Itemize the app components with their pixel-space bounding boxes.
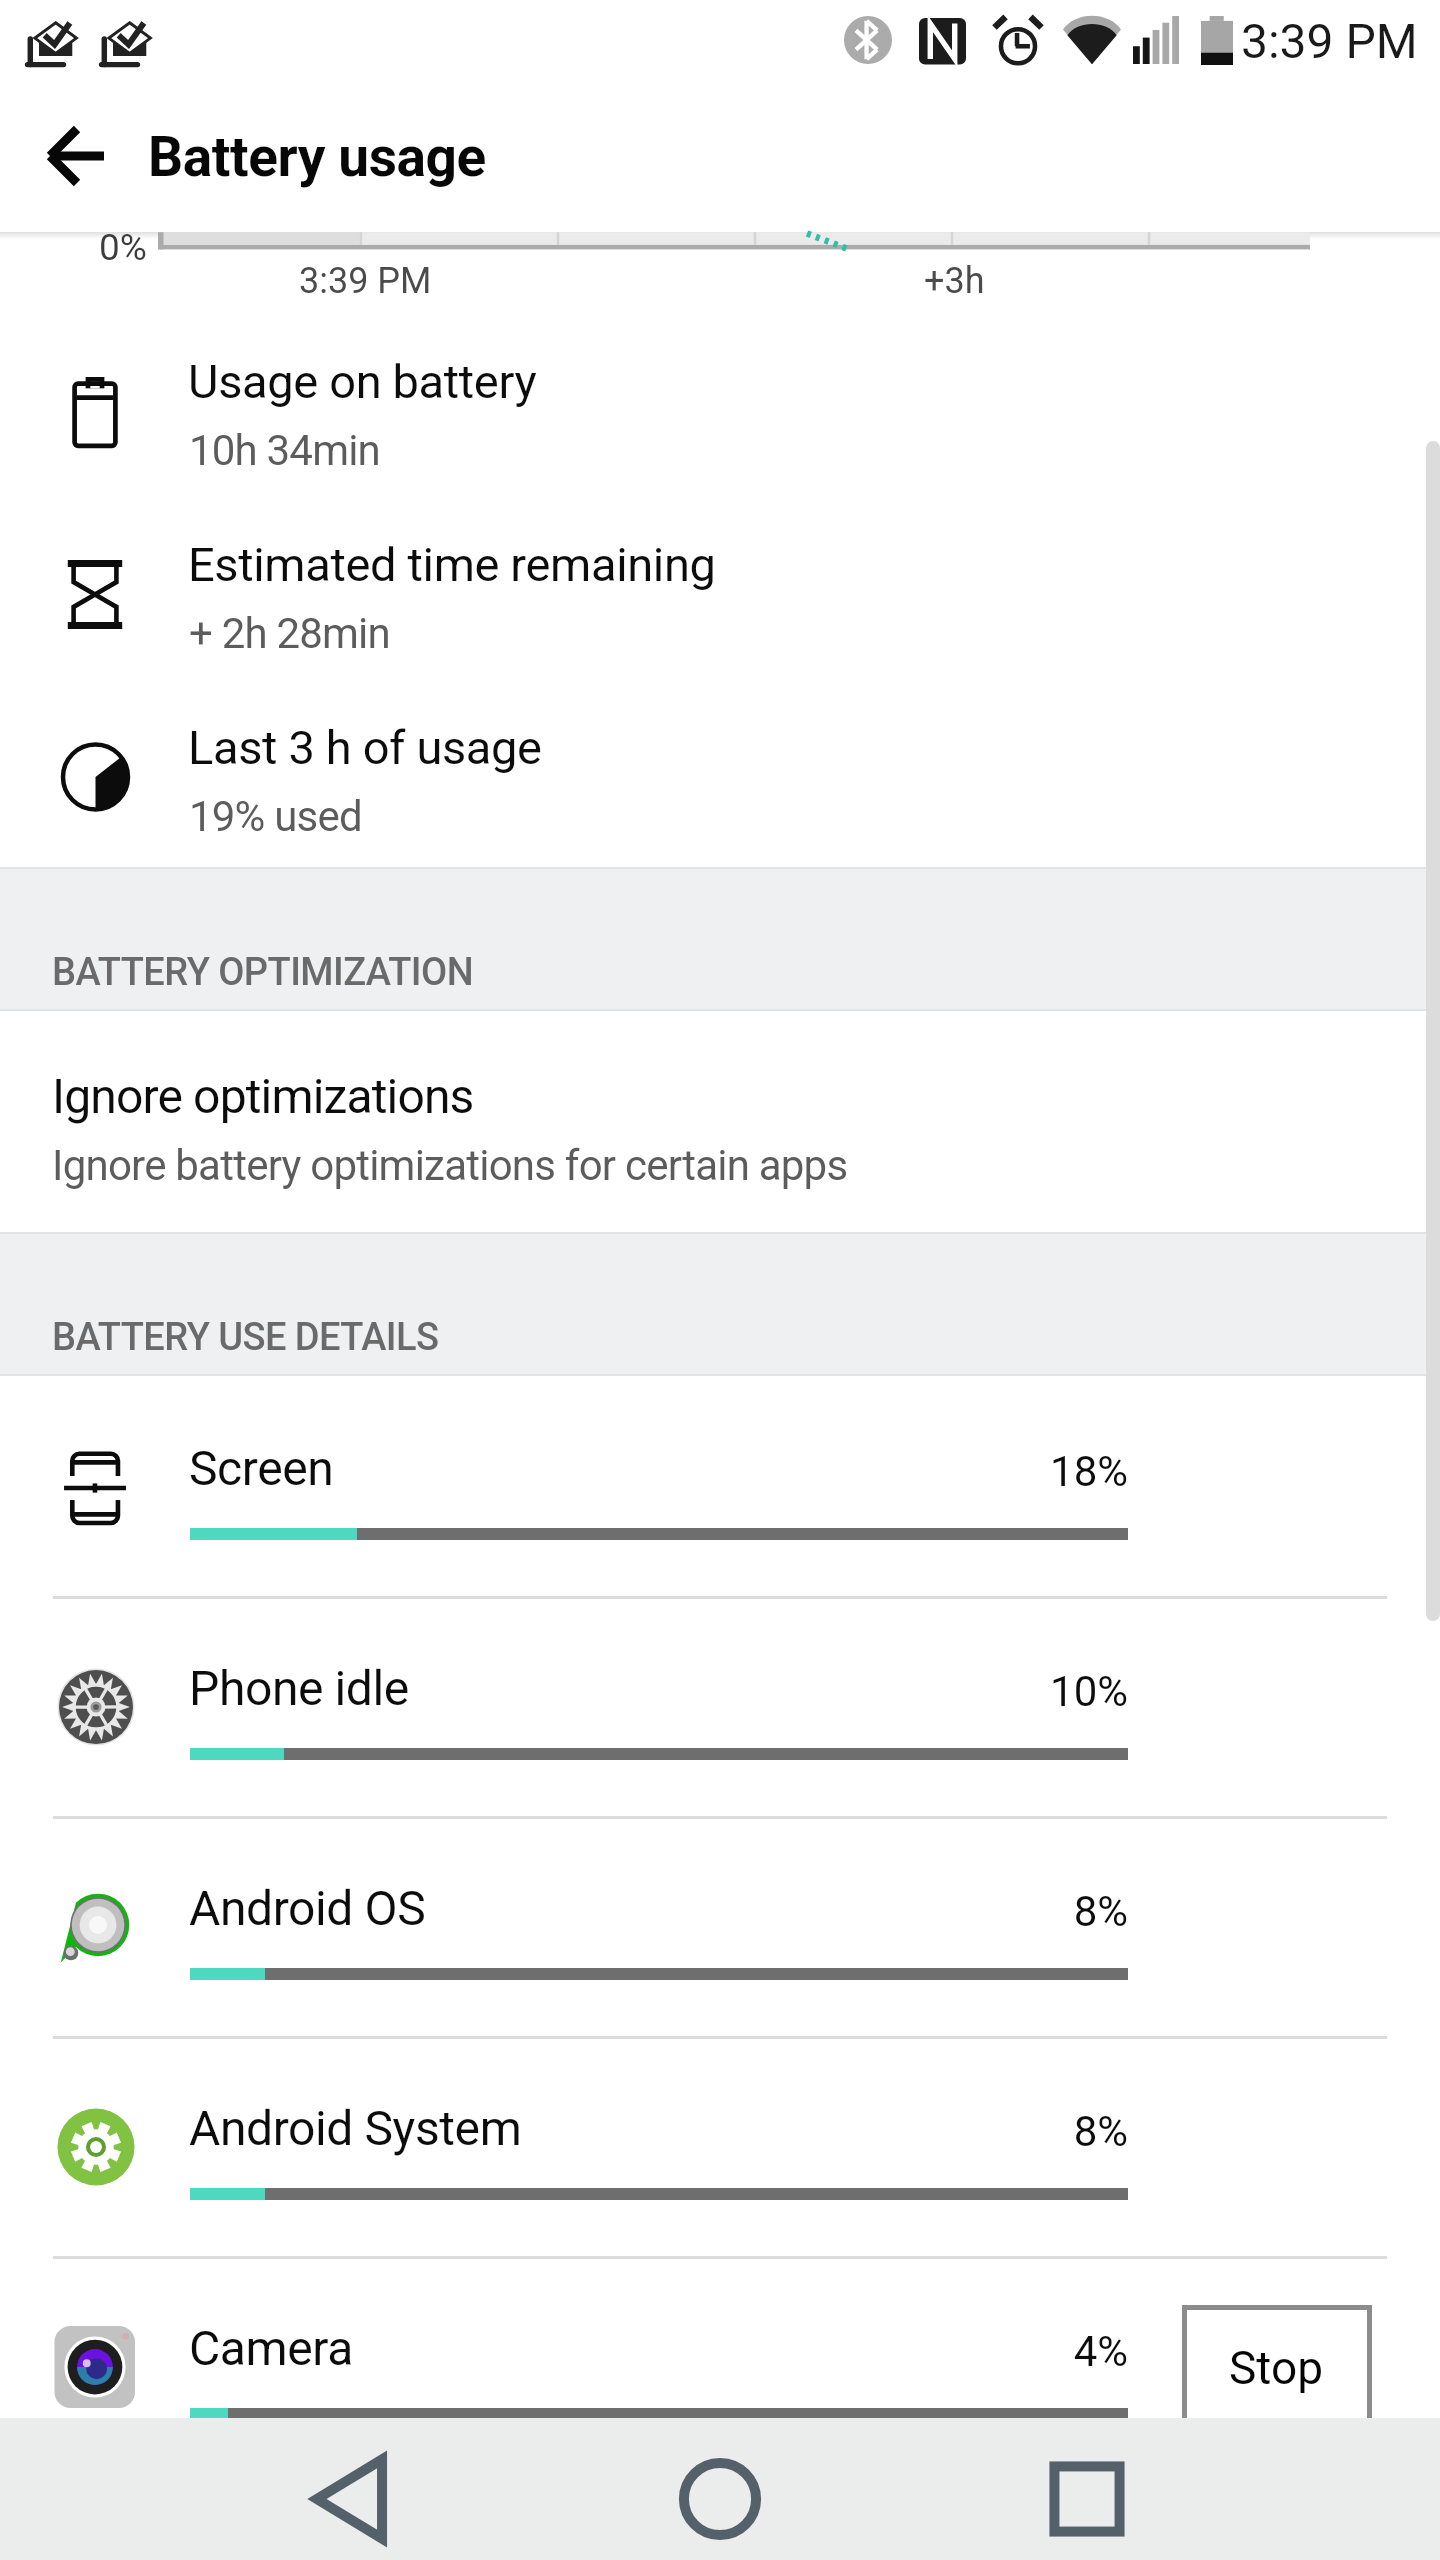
staticText: Android OS xyxy=(189,1880,426,1936)
staticText: Usage on battery xyxy=(188,354,537,409)
staticText: +3h xyxy=(924,260,985,302)
staticText: BATTERY OPTIMIZATION xyxy=(52,950,474,995)
staticText: 0% xyxy=(99,226,147,269)
staticText: 8% xyxy=(828,1887,1128,1936)
staticText: Ignore battery optimizations for certain… xyxy=(52,1141,848,1190)
button[interactable]: Recent apps xyxy=(1017,2429,1157,2560)
staticText: 10h 34min xyxy=(189,426,381,475)
staticText: Camera xyxy=(189,2320,353,2376)
staticText: Screen xyxy=(189,1440,334,1496)
staticText: Estimated time remaining xyxy=(188,537,716,592)
button[interactable]: Phone idle xyxy=(0,1596,1440,1816)
staticText: 8% xyxy=(828,2107,1128,2156)
staticText: Android System xyxy=(189,2100,522,2156)
staticText: 3:39 PM xyxy=(299,260,432,302)
staticText: 4% xyxy=(828,2327,1128,2376)
button[interactable]: Last 3 h of usage xyxy=(0,704,1440,887)
staticText: Ignore optimizations xyxy=(52,1068,474,1124)
button[interactable]: Back xyxy=(283,2429,423,2560)
staticText: + 2h 28min xyxy=(189,609,390,658)
staticText: Last 3 h of usage xyxy=(188,720,542,775)
button[interactable]: Stop xyxy=(1182,2305,1372,2485)
staticText: 18% xyxy=(828,1447,1128,1496)
staticText: Battery usage xyxy=(148,125,486,189)
staticText: 3:39 PM xyxy=(1241,13,1418,69)
button[interactable]: Android OS xyxy=(0,1816,1440,2036)
button[interactable]: Screen xyxy=(0,1376,1440,1596)
button[interactable]: Navigate up xyxy=(26,114,130,218)
staticText: 19% used xyxy=(189,792,362,841)
button[interactable]: Camera xyxy=(0,2256,1440,2476)
staticText: Phone idle xyxy=(189,1660,409,1716)
button[interactable]: Ignore optimizations xyxy=(0,1011,1440,1234)
button[interactable]: Home xyxy=(650,2429,790,2560)
staticText: 10% xyxy=(828,1667,1128,1716)
button[interactable]: Android System xyxy=(0,2036,1440,2256)
staticText: Stop xyxy=(1182,2341,1370,2395)
button[interactable]: Usage on battery xyxy=(0,338,1440,521)
staticText: BATTERY USE DETAILS xyxy=(52,1315,439,1360)
button[interactable]: Estimated time remaining xyxy=(0,521,1440,704)
